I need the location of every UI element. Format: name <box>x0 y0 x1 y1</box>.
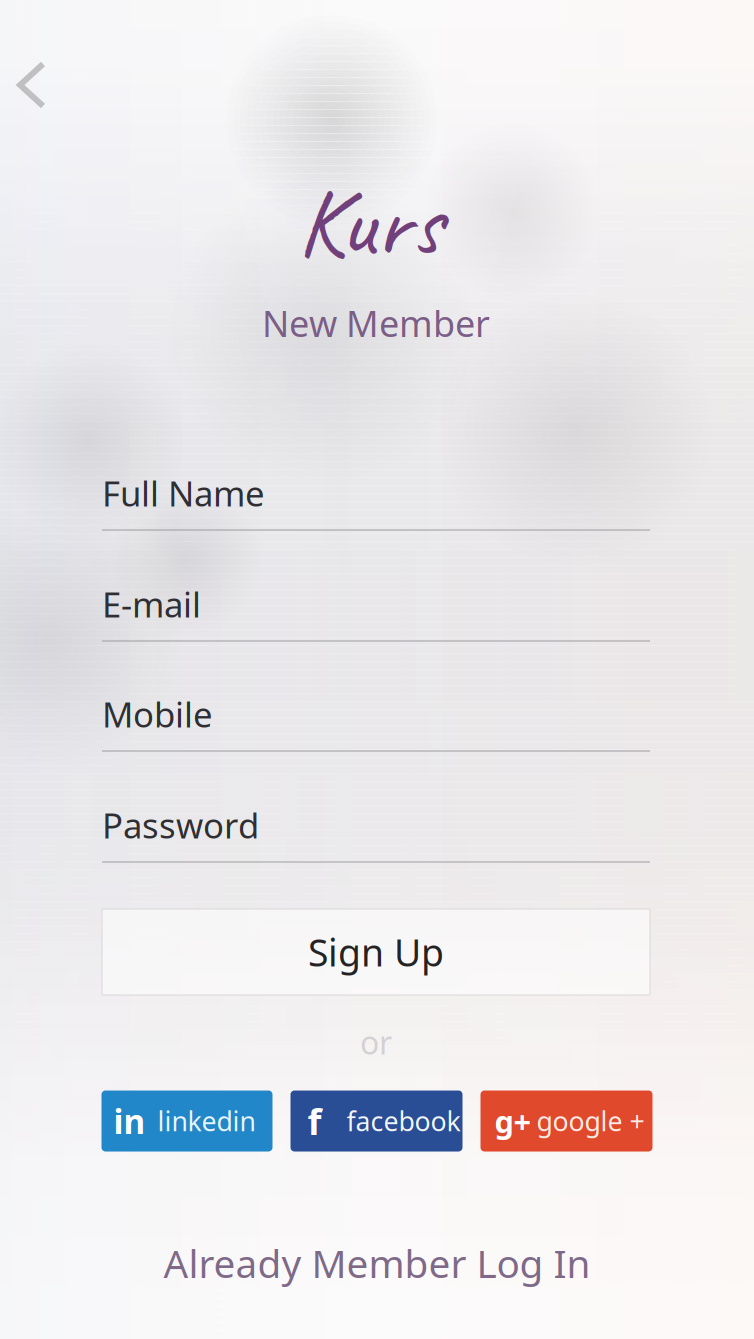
staticText: g+ <box>494 1101 531 1141</box>
staticText: Sign Up <box>308 927 444 977</box>
staticText: google + <box>536 1103 644 1139</box>
button[interactable]: Sign Up <box>102 909 650 995</box>
button[interactable]: Back <box>3 55 61 115</box>
button[interactable]: Already Member Log In <box>149 1227 604 1299</box>
staticText: E-mail <box>102 581 201 627</box>
button[interactable]: g+ <box>480 1090 652 1151</box>
staticText: Password <box>102 802 259 848</box>
staticText: New Member <box>262 299 490 347</box>
staticText: Kurs <box>297 161 443 282</box>
staticText: Mobile <box>102 691 213 737</box>
staticText: Full Name <box>102 470 265 516</box>
staticText: or <box>360 1021 392 1063</box>
staticText: f <box>307 1097 321 1145</box>
button[interactable]: in <box>101 1090 272 1151</box>
staticText: in <box>113 1099 145 1143</box>
staticText: facebook <box>346 1103 460 1139</box>
button[interactable]: f <box>290 1090 462 1151</box>
staticText: Already Member Log In <box>163 1237 590 1289</box>
staticText: linkedin <box>157 1103 255 1139</box>
